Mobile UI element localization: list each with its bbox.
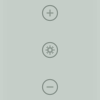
- button[interactable]: Increase: [28, 0, 72, 29]
- button[interactable]: Brightness: [28, 33, 72, 66]
- button[interactable]: Decrease: [28, 70, 72, 100]
